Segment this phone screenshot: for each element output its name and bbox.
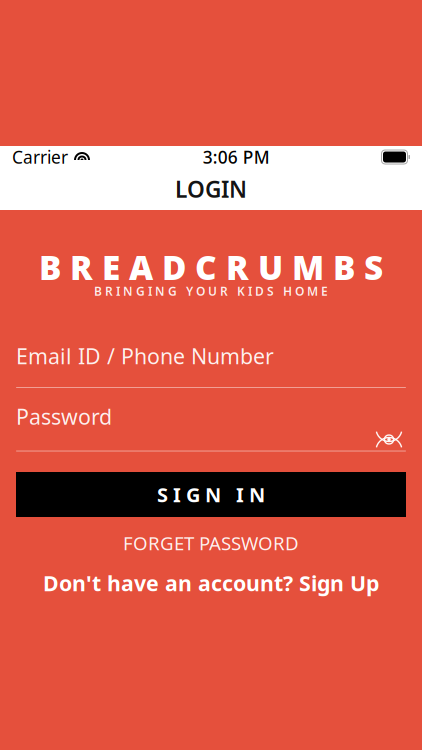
staticText: Carrier [12,145,68,168]
staticText: LOGIN [175,174,247,204]
staticText: FORGET PASSWORD [123,531,299,555]
staticText: Email ID / Phone Number [16,342,274,370]
button[interactable]: FORGET PASSWORD [0,530,422,556]
button[interactable]: S I G N I N [16,472,406,517]
staticText: B R E A D C R U M B S [39,245,383,289]
staticText: Don't have an account? Sign Up [43,569,379,597]
button[interactable]: Show password [372,428,406,450]
button[interactable]: Don't have an account? Sign Up [0,570,422,596]
staticText: S I G N I N [157,481,265,508]
staticText: B R I N G I N G Y O U R K I D S H O M E [94,283,328,299]
staticText: 3:06 PM [203,145,270,168]
staticText: Password [16,402,112,431]
